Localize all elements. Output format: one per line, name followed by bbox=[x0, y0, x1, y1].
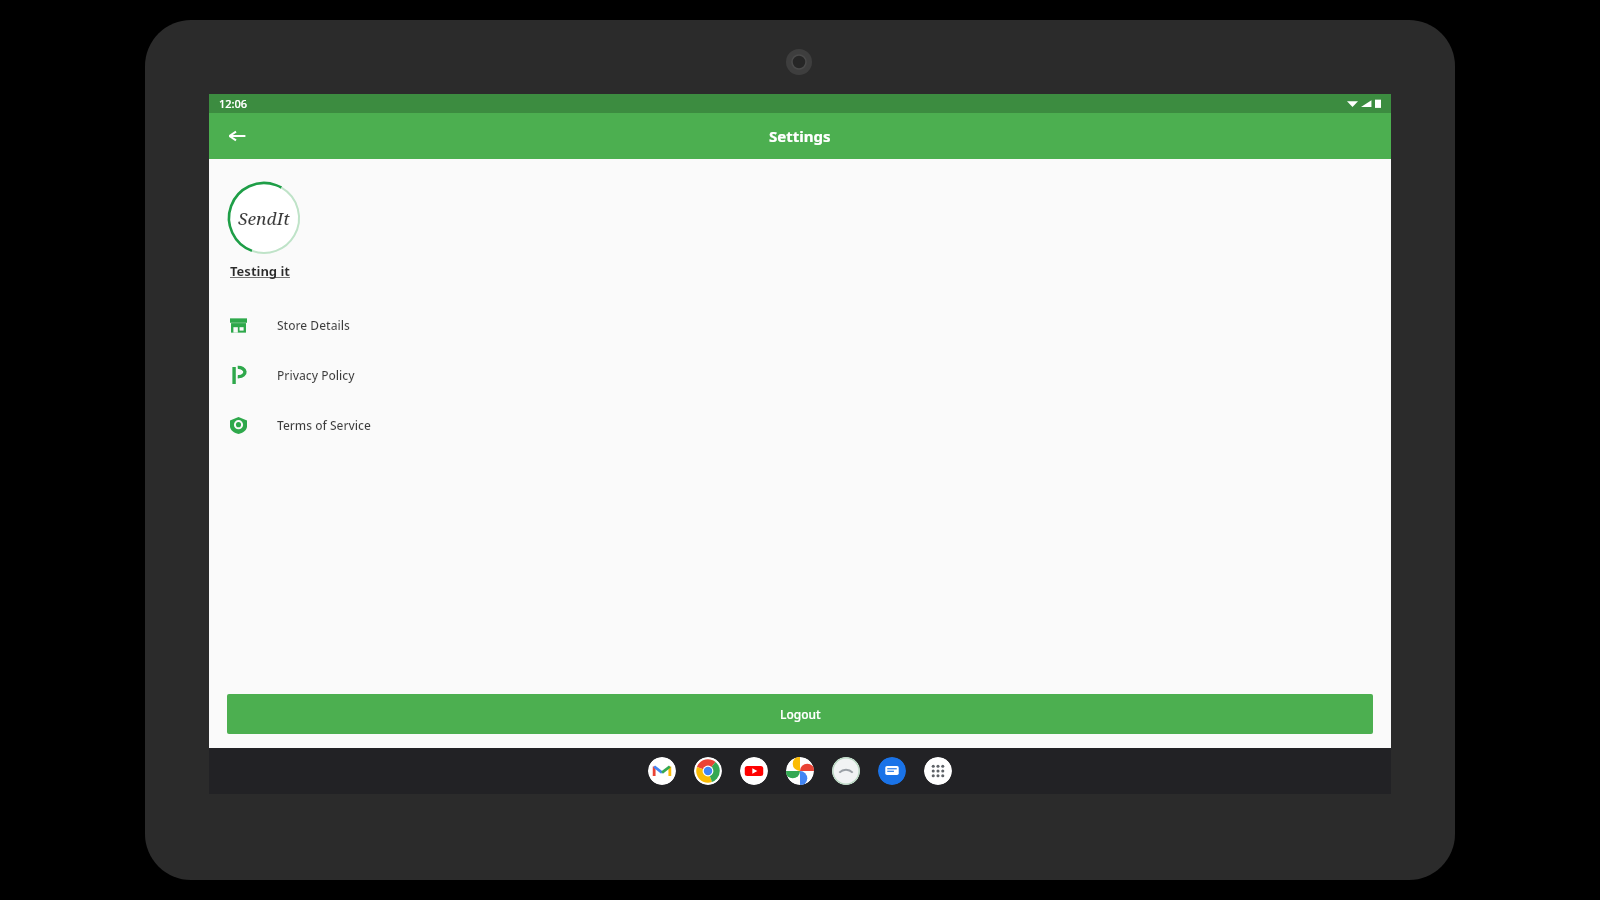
button[interactable]: Testing it bbox=[230, 262, 290, 280]
staticText: SendIt bbox=[238, 207, 290, 230]
staticText: Settings bbox=[769, 126, 831, 146]
button[interactable]: Assistant bbox=[832, 757, 860, 785]
button[interactable]: Back bbox=[217, 116, 257, 156]
staticText: Store Details bbox=[277, 317, 350, 333]
button[interactable]: Gmail bbox=[648, 757, 676, 785]
button[interactable]: Terms of Service bbox=[209, 400, 1391, 450]
staticText: Privacy Policy bbox=[277, 367, 355, 383]
button[interactable]: Logout bbox=[227, 694, 1373, 734]
staticText: 12:06 bbox=[219, 96, 248, 111]
button[interactable]: YouTube bbox=[740, 757, 768, 785]
staticText: Terms of Service bbox=[277, 417, 371, 433]
staticText: Logout bbox=[780, 706, 821, 722]
button[interactable]: Photos bbox=[786, 757, 814, 785]
button[interactable]: Chrome bbox=[694, 757, 722, 785]
button[interactable]: Messages bbox=[878, 757, 906, 785]
button[interactable]: Store Details bbox=[209, 300, 1391, 350]
button[interactable]: All apps bbox=[924, 757, 952, 785]
button[interactable]: Privacy Policy bbox=[209, 350, 1391, 400]
